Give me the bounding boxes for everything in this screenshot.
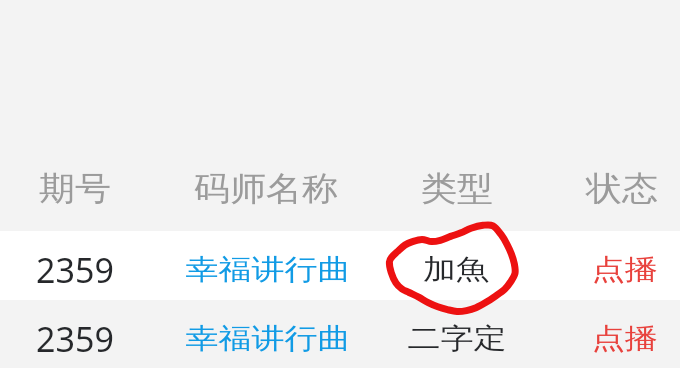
button[interactable] [0, 231, 171, 300]
staticText: 幸福讲行曲 [128, 251, 408, 287]
staticText: 二字定 [317, 320, 597, 356]
button[interactable] [363, 300, 540, 369]
staticText: 2359 [0, 316, 215, 362]
button[interactable] [171, 300, 363, 369]
staticText: 类型 [317, 168, 597, 209]
button[interactable] [540, 231, 680, 300]
button[interactable] [540, 300, 680, 369]
staticText: 加魚 [316, 251, 596, 287]
button[interactable] [171, 231, 363, 300]
button[interactable] [0, 300, 171, 369]
staticText: 状态 [482, 168, 680, 209]
staticText: 幸福讲行曲 [128, 320, 408, 356]
staticText: 点播 [485, 320, 680, 356]
staticText: 点播 [485, 251, 680, 287]
staticText: 2359 [0, 247, 215, 293]
button[interactable] [363, 231, 540, 300]
staticText: 期号 [0, 168, 215, 209]
staticText: 码师名称 [126, 168, 406, 209]
